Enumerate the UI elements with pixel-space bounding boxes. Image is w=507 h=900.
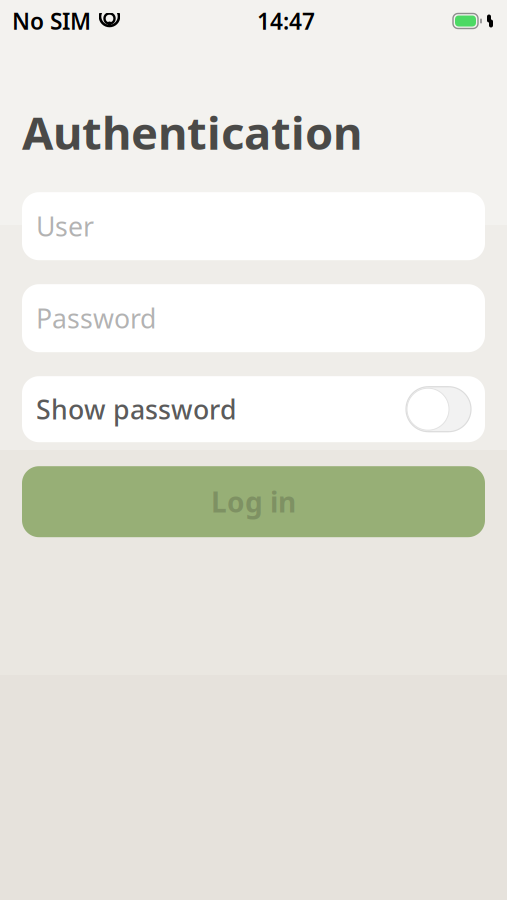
staticText: User <box>36 208 94 244</box>
staticText: Show password <box>36 391 237 427</box>
button[interactable]: User <box>22 192 485 260</box>
button[interactable]: Show password <box>22 376 485 442</box>
button[interactable]: Password <box>22 284 485 352</box>
staticText: 14:47 <box>257 6 315 36</box>
staticText: Log in <box>211 483 296 520</box>
button[interactable]: Log in <box>22 466 485 537</box>
staticText: Password <box>36 300 156 336</box>
staticText: No SIM <box>12 6 91 36</box>
staticText: Authentication <box>22 102 362 162</box>
